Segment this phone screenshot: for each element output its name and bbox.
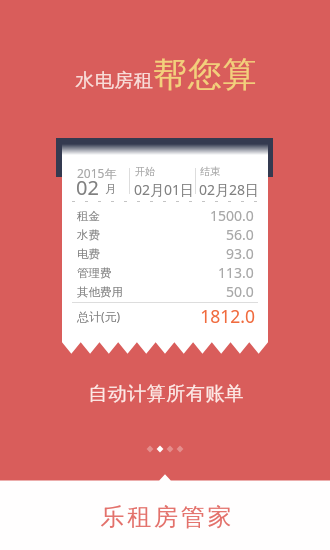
staticText: 56.0 <box>226 225 254 244</box>
staticText: 自动计算所有账单 <box>88 382 244 406</box>
staticText: 93.0 <box>226 244 254 263</box>
staticText: 其他费用 <box>77 285 123 299</box>
staticText: 乐租房管家 <box>99 502 233 532</box>
staticText: 02 <box>76 174 99 201</box>
staticText: 1812.0 <box>194 304 255 328</box>
staticText: 02月28日 <box>199 180 260 199</box>
staticText: 帮您算 <box>153 53 258 96</box>
staticText: 113.0 <box>218 263 254 282</box>
staticText: 50.0 <box>226 282 254 301</box>
staticText: 水电房租 <box>75 69 153 93</box>
staticText: 电费 <box>77 247 100 261</box>
staticText: 1500.0 <box>210 206 254 225</box>
staticText: 租金 <box>77 209 100 223</box>
staticText: 开始 <box>135 165 155 178</box>
staticText: 管理费 <box>77 266 112 280</box>
staticText: 月 <box>105 182 116 196</box>
staticText: 02月01日 <box>134 180 195 199</box>
staticText: 总计(元) <box>77 308 121 324</box>
staticText: 2015年 <box>77 165 117 181</box>
staticText: 水费 <box>77 228 100 242</box>
staticText: 结束 <box>200 165 220 178</box>
